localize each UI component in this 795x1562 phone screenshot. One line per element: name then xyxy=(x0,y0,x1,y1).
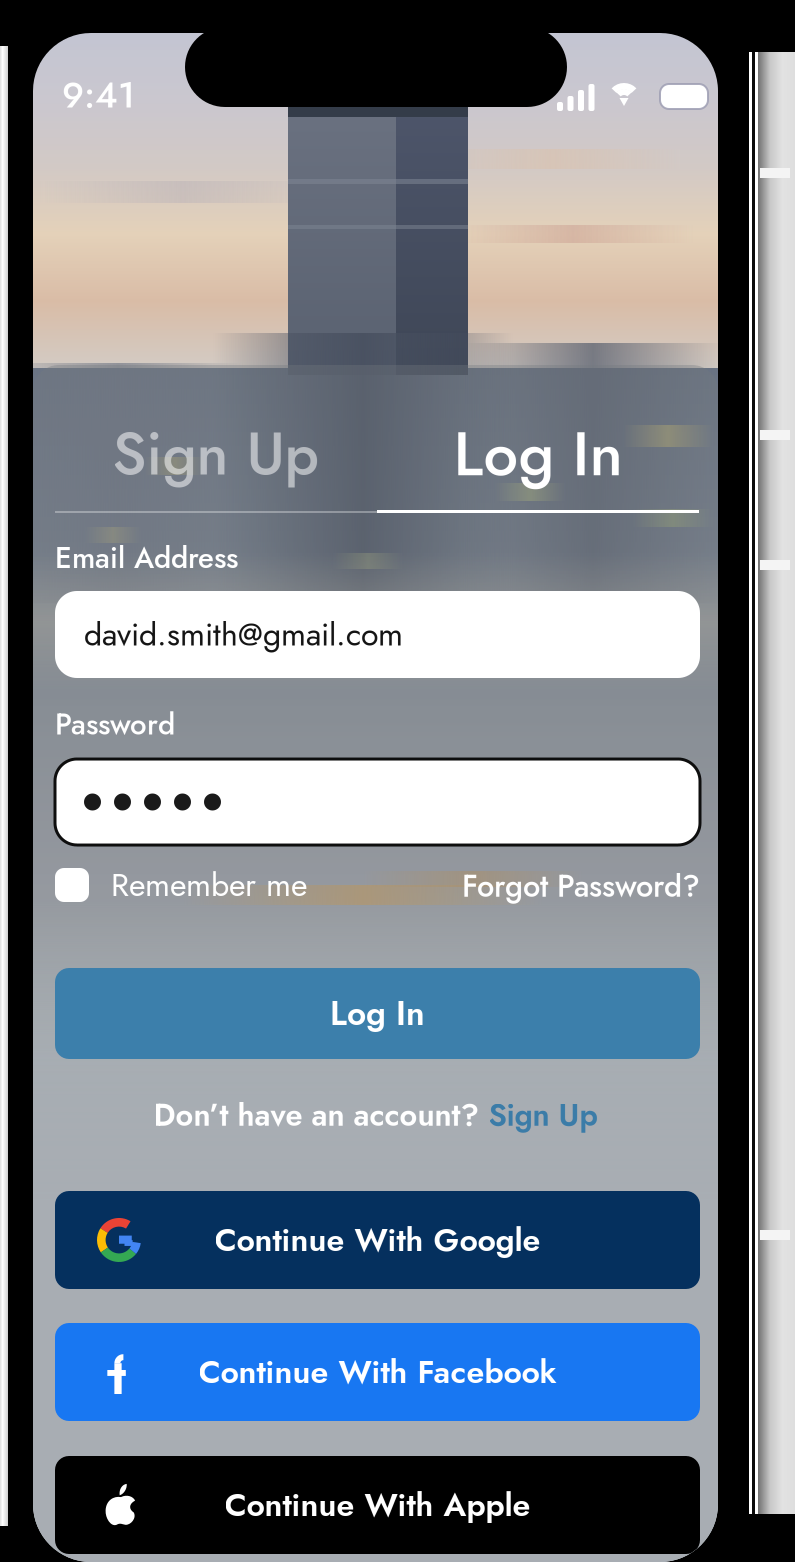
staticText: Email Address xyxy=(55,536,238,579)
button[interactable]: Continue With Facebook xyxy=(55,1323,700,1421)
button[interactable]: Sign Up xyxy=(55,415,377,493)
staticText: Continue With Apple xyxy=(224,1482,530,1528)
staticText: Continue With Facebook xyxy=(198,1349,556,1395)
button[interactable]: Log In xyxy=(55,968,700,1059)
button[interactable]: Don’t have an account? xyxy=(33,1095,718,1135)
staticText: david.smith@gmail.com xyxy=(84,611,403,658)
staticText: 9:41 xyxy=(62,69,135,121)
staticText: Log In xyxy=(330,989,425,1038)
staticText: Continue With Google xyxy=(214,1217,540,1263)
button[interactable]: Forgot Password? xyxy=(440,869,700,903)
button[interactable]: Continue With Apple xyxy=(55,1456,700,1554)
staticText: Sign Up xyxy=(488,1093,597,1137)
button[interactable]: Remember me xyxy=(55,868,345,902)
staticText: Password xyxy=(55,703,175,745)
button[interactable]: Log In xyxy=(377,415,699,493)
staticText: Log In xyxy=(453,410,622,498)
staticText: Don’t have an account? xyxy=(153,1093,488,1137)
staticText: Forgot Password? xyxy=(462,864,700,908)
staticText: Sign Up xyxy=(112,412,319,496)
button[interactable]: Continue With Google xyxy=(55,1191,700,1289)
staticText: Remember me xyxy=(111,862,307,908)
